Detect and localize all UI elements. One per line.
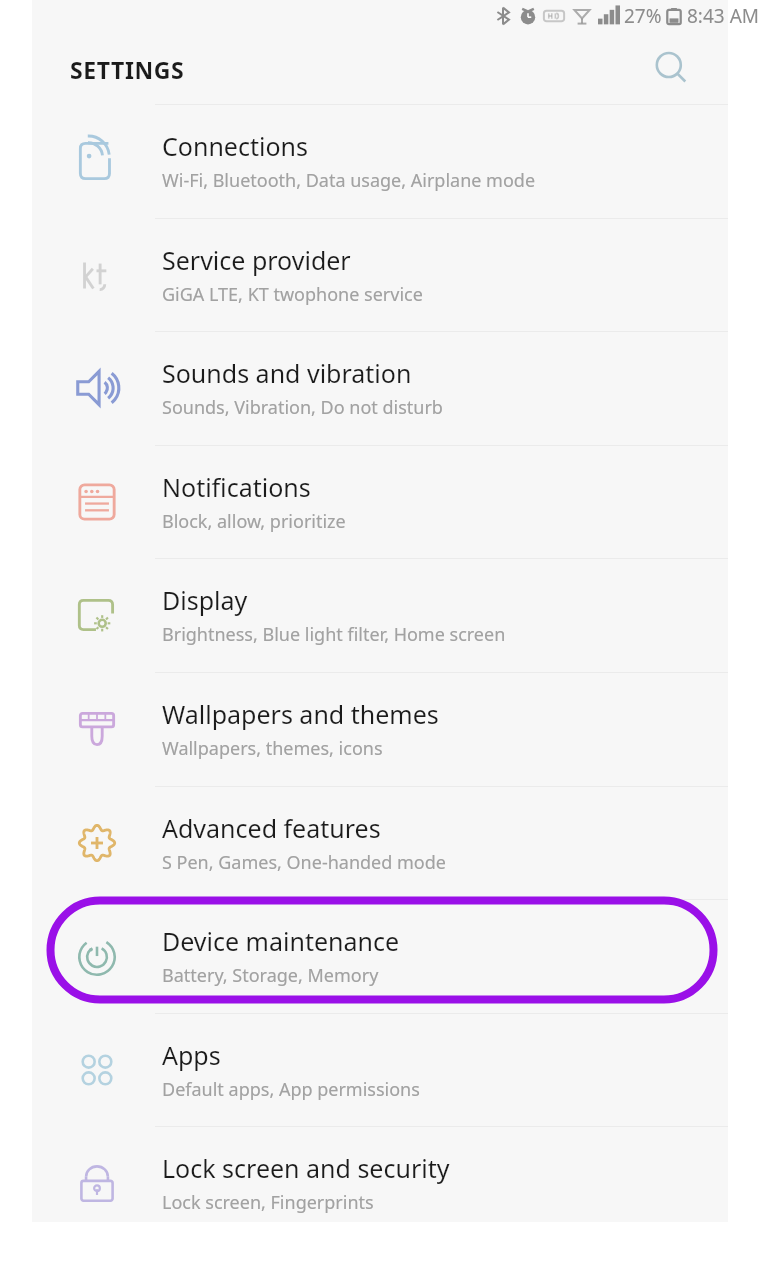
button[interactable]: Device maintenance	[32, 899, 728, 1013]
staticText: 27%	[624, 3, 662, 29]
staticText: Brightness, Blue light filter, Home scre…	[162, 622, 506, 647]
button[interactable]: Notifications	[32, 445, 728, 559]
staticText: Lock screen, Fingerprints	[162, 1190, 374, 1215]
button[interactable]: Connections	[32, 104, 728, 218]
staticText: Advanced features	[162, 811, 381, 845]
staticText: Default apps, App permissions	[162, 1077, 420, 1102]
staticText: 8:43 AM	[687, 3, 760, 29]
staticText: Battery, Storage, Memory	[162, 963, 379, 988]
staticText: S Pen, Games, One-handed mode	[162, 850, 446, 875]
button[interactable]: Apps	[32, 1013, 728, 1127]
button[interactable]: Display	[32, 558, 728, 672]
staticText: Notifications	[162, 470, 311, 504]
staticText: Wi-Fi, Bluetooth, Data usage, Airplane m…	[162, 168, 536, 193]
staticText: GiGA LTE, KT twophone service	[162, 282, 423, 307]
staticText: Block, allow, prioritize	[162, 509, 346, 534]
staticText: Service provider	[162, 243, 351, 277]
button[interactable]: Search	[644, 41, 700, 97]
staticText: Device maintenance	[162, 924, 400, 958]
staticText: SETTINGS	[70, 54, 185, 85]
staticText: Lock screen and security	[162, 1151, 450, 1185]
staticText: Apps	[162, 1038, 221, 1072]
button[interactable]: Lock screen and security	[32, 1126, 728, 1240]
staticText: Connections	[162, 129, 308, 163]
button[interactable]: Advanced features	[32, 786, 728, 900]
staticText: Wallpapers and themes	[162, 697, 439, 731]
button[interactable]: Wallpapers and themes	[32, 672, 728, 786]
button[interactable]: Service provider	[32, 218, 728, 332]
staticText: Wallpapers, themes, icons	[162, 736, 383, 761]
button[interactable]: Sounds and vibration	[32, 331, 728, 445]
staticText: Sounds and vibration	[162, 356, 412, 390]
staticText: Sounds, Vibration, Do not disturb	[162, 395, 443, 420]
staticText: Display	[162, 583, 248, 617]
